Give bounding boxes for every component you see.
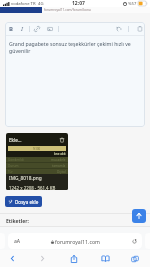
staticText: 12:07 xyxy=(72,0,85,7)
staticText: 4G xyxy=(38,1,44,7)
button[interactable]: Yenile xyxy=(131,238,138,245)
staticText: forumroyal11.com/forum/konu xyxy=(44,8,91,12)
staticText: vodafone TR xyxy=(11,1,36,7)
button[interactable]: Sekmeler xyxy=(124,250,146,267)
staticText: Gönderildi xyxy=(8,158,24,162)
staticText: I xyxy=(21,25,23,33)
staticText: B xyxy=(9,25,13,33)
button[interactable]: Gonder xyxy=(132,209,146,223)
button[interactable]: I xyxy=(18,24,25,33)
button[interactable]: Ileri xyxy=(31,250,53,267)
button[interactable]: Dosya ekle xyxy=(5,196,42,207)
staticText: aA xyxy=(14,238,21,245)
staticText: Etiketler: xyxy=(6,218,29,225)
button[interactable]: Geri al xyxy=(115,24,122,33)
staticText: Grand pagabete sonsuz teşekkürler çekimi… xyxy=(9,40,140,54)
staticText: Ekle... xyxy=(9,137,22,143)
staticText: %100 xyxy=(33,147,41,151)
button[interactable]: Paylas xyxy=(63,250,85,267)
staticText: IMG_8018.png xyxy=(9,175,42,182)
staticText: Durum xyxy=(8,164,19,168)
button[interactable]: Baglanti xyxy=(33,24,40,33)
staticText: mucadele xyxy=(51,158,66,162)
button[interactable]: Sil xyxy=(58,136,66,144)
staticText: 1242 x 2208 - 561.4 KB xyxy=(9,185,56,190)
button[interactable]: Yer imleri xyxy=(94,250,116,267)
staticText: Dosya ekle xyxy=(15,199,39,205)
button[interactable]: aA xyxy=(8,233,142,249)
button[interactable]: B xyxy=(7,24,14,33)
button[interactable]: Resim xyxy=(46,24,53,33)
staticText: tamamla xyxy=(52,164,66,168)
staticText: %57 xyxy=(128,1,137,7)
button[interactable]: Geri xyxy=(1,250,23,267)
staticText: Dijital xyxy=(57,170,66,174)
button[interactable]: Yapistir xyxy=(136,24,143,33)
staticText: Tür xyxy=(8,170,13,174)
staticText: forumroyal11.com xyxy=(55,238,100,245)
staticText: bne abit xyxy=(54,152,66,156)
